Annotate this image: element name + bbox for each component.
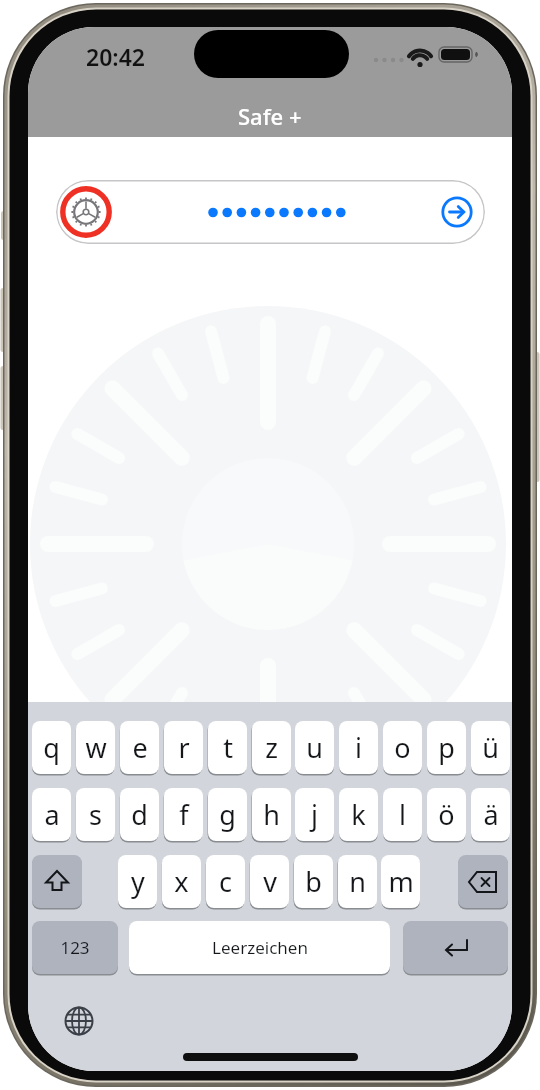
staticText: z: [265, 729, 278, 766]
button[interactable]: c: [206, 855, 245, 908]
staticText: c: [219, 863, 232, 900]
staticText: Leerzeichen: [212, 936, 308, 959]
staticText: t: [223, 729, 233, 766]
button[interactable]: r: [164, 721, 203, 774]
staticText: f: [179, 796, 189, 833]
staticText: ö: [438, 796, 455, 833]
staticText: 20:42: [86, 41, 145, 72]
button[interactable]: [403, 921, 508, 974]
button[interactable]: l: [383, 788, 422, 841]
staticText: u: [306, 729, 323, 766]
button[interactable]: o: [383, 721, 422, 774]
staticText: h: [263, 796, 280, 833]
button[interactable]: 123: [32, 921, 118, 974]
button[interactable]: i: [339, 721, 378, 774]
button[interactable]: [58, 184, 114, 240]
button[interactable]: z: [252, 721, 291, 774]
button[interactable]: [458, 855, 508, 908]
staticText: ü: [482, 729, 499, 766]
button[interactable]: b: [294, 855, 333, 908]
button[interactable]: e: [120, 721, 159, 774]
staticText: s: [89, 796, 102, 833]
staticText: p: [438, 729, 455, 766]
button[interactable]: d: [120, 788, 159, 841]
button[interactable]: f: [164, 788, 203, 841]
button[interactable]: y: [118, 855, 157, 908]
staticText: a: [44, 796, 60, 833]
button[interactable]: k: [339, 788, 378, 841]
button[interactable]: v: [250, 855, 289, 908]
staticText: d: [131, 796, 148, 833]
button[interactable]: ä: [471, 788, 510, 841]
button[interactable]: ö: [427, 788, 466, 841]
staticText: 123: [60, 936, 90, 959]
staticText: n: [349, 863, 366, 900]
button[interactable]: h: [252, 788, 291, 841]
staticText: r: [178, 729, 190, 766]
staticText: y: [131, 863, 145, 900]
button[interactable]: q: [32, 721, 71, 774]
staticText: k: [351, 796, 366, 833]
button[interactable]: u: [295, 721, 334, 774]
button[interactable]: j: [295, 788, 334, 841]
button[interactable]: [440, 195, 474, 229]
staticText: l: [399, 796, 406, 833]
button[interactable]: [64, 1006, 94, 1036]
staticText: ä: [483, 796, 499, 833]
staticText: m: [388, 863, 414, 900]
button[interactable]: x: [162, 855, 201, 908]
staticText: o: [394, 729, 411, 766]
staticText: g: [219, 796, 236, 833]
button[interactable]: a: [32, 788, 71, 841]
staticText: j: [311, 796, 318, 833]
button[interactable]: w: [76, 721, 115, 774]
staticText: w: [85, 729, 107, 766]
button[interactable]: m: [381, 855, 420, 908]
staticText: Safe +: [238, 101, 302, 129]
staticText: i: [355, 729, 362, 766]
button[interactable]: n: [338, 855, 377, 908]
staticText: q: [43, 729, 60, 766]
button[interactable]: g: [208, 788, 247, 841]
button[interactable]: p: [427, 721, 466, 774]
staticText: v: [263, 863, 277, 900]
button[interactable]: [32, 855, 82, 908]
staticText: e: [132, 729, 148, 766]
button[interactable]: [56, 180, 485, 244]
staticText: b: [305, 863, 322, 900]
button[interactable]: Leerzeichen: [129, 921, 390, 974]
staticText: x: [174, 863, 189, 900]
button[interactable]: ü: [471, 721, 510, 774]
button[interactable]: s: [76, 788, 115, 841]
button[interactable]: t: [208, 721, 247, 774]
